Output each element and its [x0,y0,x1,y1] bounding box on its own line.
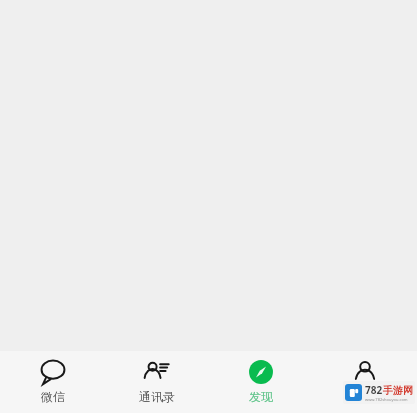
staticText: 手游网 [383,384,413,397]
staticText: 微信 [41,389,65,404]
button[interactable]: 微信 [0,351,105,404]
staticText: 发现 [249,389,273,404]
staticText: 通讯录 [139,389,175,404]
button[interactable]: 发现 [209,351,313,404]
staticText: 我 [359,389,371,404]
staticText: www.782shouyou.com [365,397,408,402]
staticText: 782 [365,383,383,397]
button[interactable]: 通讯录 [105,351,209,404]
button[interactable]: 我 [313,351,417,404]
